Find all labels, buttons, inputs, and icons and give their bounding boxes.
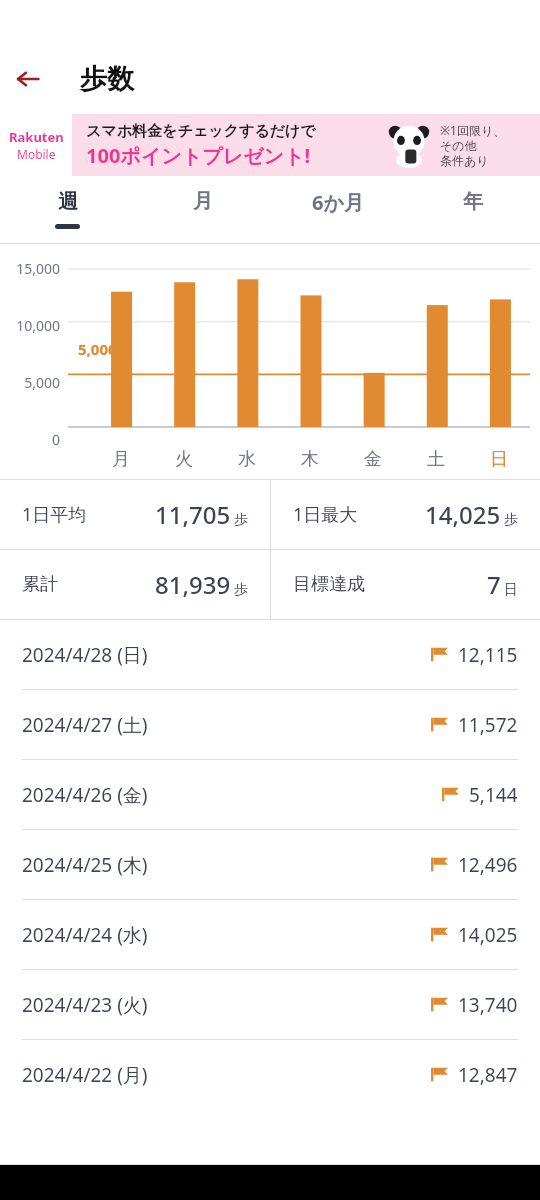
staticText: 木 <box>301 448 319 471</box>
button[interactable]: 週 <box>0 176 135 244</box>
staticText: 5,000 <box>78 339 117 359</box>
staticText: 15,000 <box>0 259 60 278</box>
staticText: 日 <box>504 581 518 599</box>
button[interactable]: 2024/4/22 (月) <box>0 1040 540 1109</box>
staticText: 火 <box>175 448 193 471</box>
staticText: 歩 <box>234 511 248 529</box>
staticText: 11,705 <box>155 498 231 531</box>
button[interactable]: 月 <box>135 176 270 244</box>
staticText: 13,740 <box>458 992 518 1018</box>
staticText: 2024/4/28 (日) <box>22 642 148 668</box>
staticText: 12,496 <box>458 852 518 878</box>
staticText: 週 <box>58 189 78 214</box>
button[interactable]: Rakuten <box>0 114 540 176</box>
staticText: 金 <box>364 448 382 471</box>
staticText: 14,025 <box>425 498 501 531</box>
staticText: 2024/4/26 (金) <box>22 782 148 808</box>
button[interactable]: 1日平均 <box>0 480 270 549</box>
staticText: 1日平均 <box>22 502 87 527</box>
button[interactable]: Back <box>0 51 56 107</box>
staticText: 2024/4/27 (土) <box>22 712 148 738</box>
staticText: 土 <box>427 448 445 471</box>
staticText: 7 <box>487 568 501 601</box>
staticText: 0 <box>0 430 60 449</box>
staticText: 100ポイントプレゼント! <box>86 142 311 169</box>
button[interactable]: 2024/4/27 (土) <box>0 690 540 759</box>
staticText: 12,847 <box>458 1062 518 1088</box>
staticText: 2024/4/24 (水) <box>22 922 148 948</box>
button[interactable]: 目標達成 <box>271 550 540 619</box>
staticText: 日 <box>490 448 508 471</box>
staticText: 水 <box>238 448 256 471</box>
staticText: 歩 <box>234 581 248 599</box>
staticText: 年 <box>463 189 483 214</box>
staticText: スマホ料金をチェックするだけで <box>86 122 316 141</box>
button[interactable]: 年 <box>405 176 540 244</box>
staticText: 5,000 <box>0 373 60 392</box>
staticText: 月 <box>112 448 130 471</box>
staticText: 月 <box>193 189 213 214</box>
staticText: 1日最大 <box>293 502 358 527</box>
staticText: 14,025 <box>458 922 518 948</box>
button[interactable]: 1日最大 <box>271 480 540 549</box>
button[interactable]: 累計 <box>0 550 270 619</box>
staticText: Rakuten <box>9 128 64 146</box>
button[interactable]: 2024/4/25 (木) <box>0 830 540 899</box>
button[interactable]: 2024/4/26 (金) <box>0 760 540 829</box>
staticText: 累計 <box>22 573 58 596</box>
staticText: 2024/4/22 (月) <box>22 1062 148 1088</box>
staticText: Mobile <box>17 146 56 162</box>
button[interactable]: 2024/4/28 (日) <box>0 620 540 689</box>
staticText: 目標達成 <box>293 573 365 596</box>
staticText: 2024/4/23 (火) <box>22 992 148 1018</box>
staticText: 81,939 <box>155 568 231 601</box>
staticText: 条件あり <box>440 153 489 168</box>
button[interactable]: 2024/4/24 (水) <box>0 900 540 969</box>
staticText: 10,000 <box>0 316 60 335</box>
staticText: 歩数 <box>80 62 134 96</box>
staticText: 12,115 <box>458 642 518 668</box>
button[interactable]: 2024/4/23 (火) <box>0 970 540 1039</box>
staticText: 2024/4/25 (木) <box>22 852 148 878</box>
staticText: 11,572 <box>458 712 518 738</box>
staticText: 歩 <box>504 511 518 529</box>
button[interactable]: 6か月 <box>270 176 405 244</box>
staticText: 5,144 <box>469 782 518 808</box>
staticText: その他 <box>440 138 477 153</box>
staticText: ※1回限り、 <box>440 122 506 138</box>
staticText: 6か月 <box>312 189 364 216</box>
